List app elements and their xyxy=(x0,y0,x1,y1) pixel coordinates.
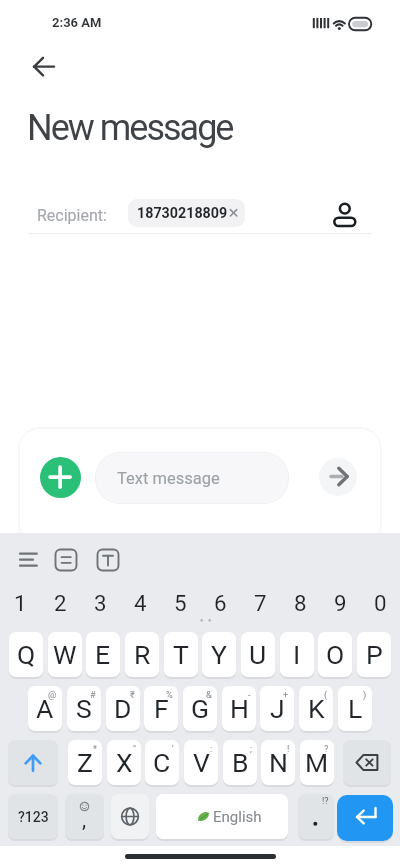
staticText: ( xyxy=(324,689,328,700)
button[interactable]: 4 xyxy=(120,588,160,617)
button[interactable]: X xyxy=(107,740,141,785)
button[interactable]: O xyxy=(318,632,352,677)
button[interactable] xyxy=(94,545,124,575)
button[interactable] xyxy=(319,458,357,496)
button[interactable] xyxy=(111,794,149,839)
button[interactable]: 1 xyxy=(0,588,40,617)
button[interactable]: 5 xyxy=(160,588,200,617)
staticText: 18730218809 xyxy=(137,205,228,222)
button[interactable]: Q xyxy=(9,632,43,677)
button[interactable]: 3 xyxy=(80,588,120,617)
staticText: @ xyxy=(48,689,57,700)
staticText: 2:36 AM xyxy=(52,15,102,30)
button[interactable]: 7 xyxy=(240,588,280,617)
button[interactable]: E xyxy=(86,632,120,677)
staticText: M xyxy=(305,747,329,778)
button[interactable]: H xyxy=(222,686,256,731)
staticText: : xyxy=(210,743,213,754)
button[interactable]: M xyxy=(300,740,334,785)
staticText: 9 xyxy=(334,590,347,616)
staticText: T xyxy=(173,639,189,670)
staticText: New message xyxy=(27,107,233,149)
staticText: I xyxy=(293,639,301,670)
button[interactable]: D xyxy=(106,686,140,731)
staticText: B xyxy=(232,747,249,778)
button[interactable] xyxy=(337,795,393,841)
button[interactable] xyxy=(40,457,81,498)
button[interactable]: G xyxy=(183,686,217,731)
staticText: % xyxy=(166,689,173,700)
button[interactable]: !? xyxy=(298,794,334,839)
button[interactable]: F xyxy=(144,686,178,731)
staticText: Text message xyxy=(117,469,220,488)
staticText: 2 xyxy=(54,590,67,616)
button[interactable] xyxy=(24,52,64,82)
button[interactable]: Z xyxy=(68,740,102,785)
button[interactable]: 9 xyxy=(320,588,360,617)
button[interactable]: V xyxy=(184,740,218,785)
staticText: 4 xyxy=(134,590,147,616)
button[interactable]: J xyxy=(260,686,294,731)
staticText: ₹ xyxy=(130,689,135,700)
staticText: F xyxy=(154,693,169,724)
staticText: O xyxy=(326,639,345,670)
button[interactable]: W xyxy=(48,632,82,677)
staticText: Q xyxy=(17,639,36,670)
staticText: J xyxy=(270,693,285,724)
staticText: X xyxy=(116,747,133,778)
staticText: English xyxy=(213,808,262,826)
button[interactable]: A xyxy=(28,686,62,731)
button[interactable]: English xyxy=(156,794,288,839)
button[interactable]: K xyxy=(299,686,333,731)
button[interactable]: 18730218809 xyxy=(128,199,245,227)
staticText: ' xyxy=(172,743,174,754)
staticText: 3 xyxy=(94,590,107,616)
button[interactable]: U xyxy=(241,632,275,677)
staticText: S xyxy=(76,693,92,724)
button[interactable]: I xyxy=(280,632,314,677)
staticText: ; xyxy=(250,743,252,754)
button[interactable]: 8 xyxy=(280,588,320,617)
button[interactable]: 6 xyxy=(200,588,240,617)
staticText: ? xyxy=(324,743,329,754)
staticText: Y xyxy=(211,639,227,670)
button[interactable] xyxy=(328,192,364,234)
staticText: ?123 xyxy=(18,809,49,825)
button[interactable]: S xyxy=(67,686,101,731)
button[interactable]: 0 xyxy=(360,588,400,617)
button[interactable]: R xyxy=(125,632,159,677)
staticText: U xyxy=(249,639,267,670)
button[interactable] xyxy=(52,545,82,575)
staticText: " xyxy=(133,743,136,754)
staticText: ) xyxy=(363,689,367,700)
button[interactable] xyxy=(343,740,391,785)
button[interactable]: Text message xyxy=(95,452,289,504)
staticText: E xyxy=(95,639,111,670)
button[interactable]: 2 xyxy=(40,588,80,617)
button[interactable]: Y xyxy=(202,632,236,677)
button[interactable]: N xyxy=(261,740,295,785)
staticText: # xyxy=(90,689,96,700)
button[interactable]: T xyxy=(164,632,198,677)
staticText: L xyxy=(348,693,363,724)
staticText: 1 xyxy=(14,590,27,616)
button[interactable]: L xyxy=(338,686,372,731)
staticText: 6 xyxy=(214,590,227,616)
staticText: ! xyxy=(287,743,290,754)
staticText: - xyxy=(248,689,251,700)
button[interactable] xyxy=(8,740,58,785)
staticText: G xyxy=(191,693,210,724)
staticText: Recipient: xyxy=(37,206,107,225)
button[interactable] xyxy=(12,545,44,575)
staticText: !? xyxy=(322,796,329,807)
button[interactable]: , xyxy=(65,794,104,839)
staticText: H xyxy=(230,693,249,724)
button[interactable]: B xyxy=(223,740,257,785)
button[interactable]: C xyxy=(145,740,179,785)
staticText: D xyxy=(114,693,132,724)
button[interactable]: P xyxy=(357,632,391,677)
staticText: + xyxy=(283,689,289,700)
staticText: 7 xyxy=(254,590,267,616)
staticText: , xyxy=(82,808,87,833)
button[interactable]: ?123 xyxy=(8,794,58,839)
